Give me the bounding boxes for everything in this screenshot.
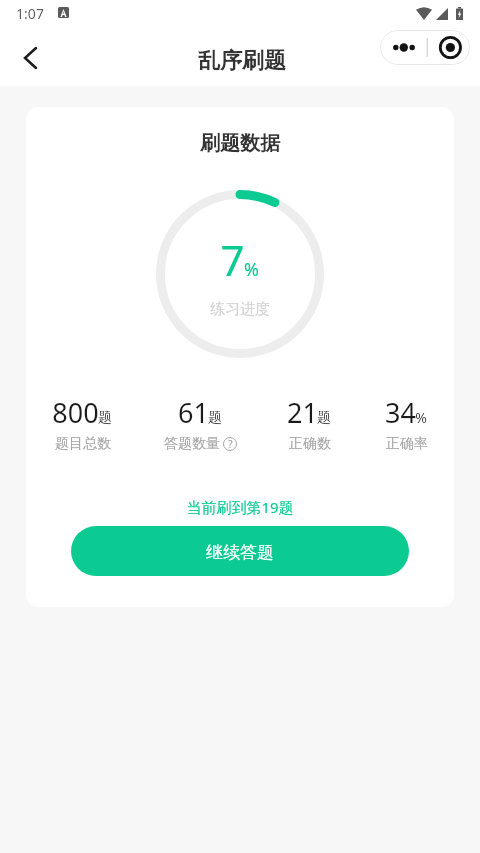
staticText: 800	[52, 394, 99, 431]
staticText: 练习进度	[210, 300, 270, 319]
staticText: 答题数量	[164, 435, 220, 453]
staticText: 61	[178, 394, 209, 431]
staticText: 乱序刷题	[198, 47, 286, 75]
staticText: ?	[228, 437, 233, 451]
staticText: %	[415, 408, 427, 427]
button[interactable]: Back	[5, 33, 53, 81]
staticText: 继续答题	[206, 542, 274, 563]
staticText: 21	[287, 394, 318, 431]
staticText: 当前刷到第19题	[186, 497, 294, 517]
staticText: 题目总数	[55, 435, 111, 453]
staticText: 1:07	[16, 4, 44, 23]
staticText: 正确率	[386, 435, 428, 453]
button[interactable]: 继续答题	[71, 526, 409, 576]
staticText: 正确数	[289, 435, 331, 453]
staticText: 题	[98, 409, 112, 427]
staticText: 题	[317, 409, 331, 427]
staticText: 题	[208, 409, 222, 427]
button[interactable]: Menu	[380, 30, 470, 65]
button[interactable]: Help	[223, 437, 237, 451]
staticText: %	[244, 257, 259, 282]
staticText: 刷题数据	[200, 131, 280, 156]
staticText: 7	[220, 231, 245, 288]
staticText: 34	[385, 394, 416, 431]
